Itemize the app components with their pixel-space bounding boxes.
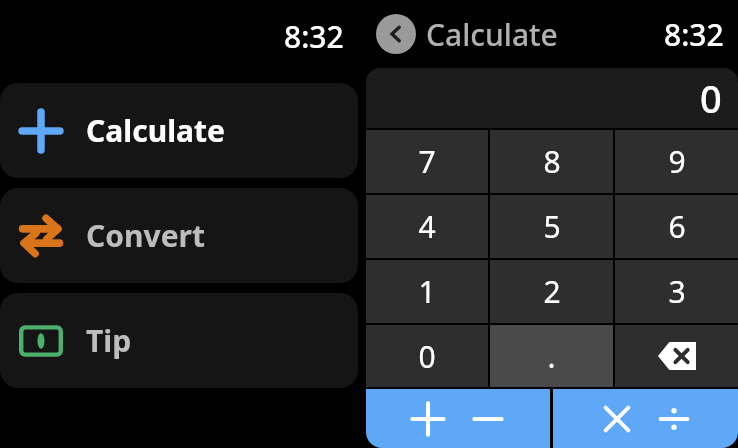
button[interactable]: Multiply and divide [553, 389, 738, 448]
staticText: 1 [418, 271, 436, 312]
staticText: 8 [543, 141, 561, 182]
button[interactable]: Add and subtract [366, 389, 550, 448]
button[interactable]: . [490, 325, 613, 387]
staticText: 6 [668, 206, 686, 247]
staticText: Calculate [426, 14, 558, 55]
staticText: Calculate [86, 110, 225, 151]
staticText: 8:32 [284, 16, 344, 57]
button[interactable]: 8 [490, 130, 613, 193]
button[interactable]: 2 [490, 260, 613, 323]
button[interactable]: 1 [366, 260, 488, 323]
button[interactable]: 6 [615, 195, 738, 258]
staticText: 3 [668, 271, 686, 312]
staticText: 7 [418, 141, 436, 182]
button[interactable]: 4 [366, 195, 488, 258]
button[interactable]: Tip [0, 293, 358, 388]
button[interactable]: 3 [615, 260, 738, 323]
staticText: 2 [543, 271, 561, 312]
staticText: 0 [700, 72, 722, 124]
button[interactable]: 5 [490, 195, 613, 258]
staticText: 0 [418, 336, 436, 377]
button[interactable]: Back [376, 14, 416, 54]
button[interactable]: 0 [366, 325, 488, 387]
staticText: 4 [418, 206, 436, 247]
staticText: . [547, 336, 556, 377]
staticText: 5 [543, 206, 561, 247]
staticText: 9 [668, 141, 686, 182]
button[interactable]: 9 [615, 130, 738, 193]
staticText: 8:32 [664, 14, 724, 55]
button[interactable]: Delete [615, 325, 738, 387]
button[interactable]: Convert [0, 188, 358, 283]
button[interactable]: 7 [366, 130, 488, 193]
staticText: Tip [86, 320, 132, 361]
button[interactable]: Calculate [0, 83, 358, 178]
staticText: Convert [86, 215, 205, 256]
